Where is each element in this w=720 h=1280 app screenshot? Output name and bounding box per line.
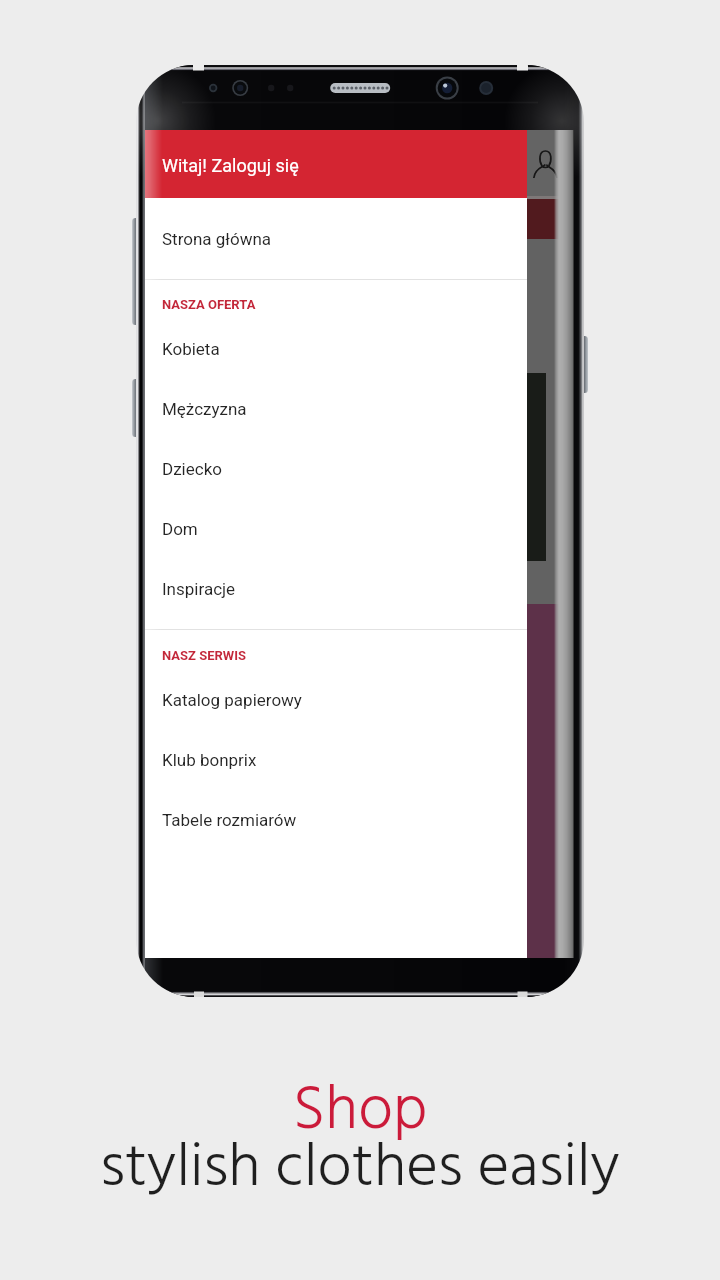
- staticText: Klub bonprix: [162, 750, 257, 770]
- button[interactable]: Dziecko: [145, 439, 527, 499]
- button[interactable]: Tabele rozmiarów: [145, 790, 527, 850]
- staticText: Katalog papierowy: [162, 690, 302, 710]
- staticText: Kobieta: [162, 339, 220, 359]
- button[interactable]: Mężczyzna: [145, 379, 527, 439]
- button[interactable]: Strona główna: [145, 198, 527, 279]
- staticText: Shop: [0, 1063, 720, 1162]
- button[interactable]: My account: [532, 138, 574, 186]
- staticText: Witaj! Zaloguj się: [162, 155, 299, 176]
- button[interactable]: Dom: [145, 499, 527, 559]
- button[interactable]: Kobieta: [145, 319, 527, 379]
- staticText: stylish clothes easily: [0, 1121, 720, 1219]
- button[interactable]: Klub bonprix: [145, 730, 527, 790]
- staticText: NASZ SERWIS: [162, 648, 246, 663]
- staticText: Dom: [162, 519, 198, 539]
- staticText: Mężczyzna: [162, 399, 247, 419]
- staticText: NASZA OFERTA: [162, 297, 256, 312]
- button[interactable]: Witaj! Zaloguj się: [145, 130, 527, 198]
- button[interactable]: Katalog papierowy: [145, 670, 527, 730]
- staticText: Inspiracje: [162, 579, 236, 599]
- button[interactable]: Inspiracje: [145, 559, 527, 619]
- staticText: Tabele rozmiarów: [162, 810, 297, 830]
- staticText: Strona główna: [162, 229, 272, 249]
- staticText: Dziecko: [162, 459, 222, 479]
